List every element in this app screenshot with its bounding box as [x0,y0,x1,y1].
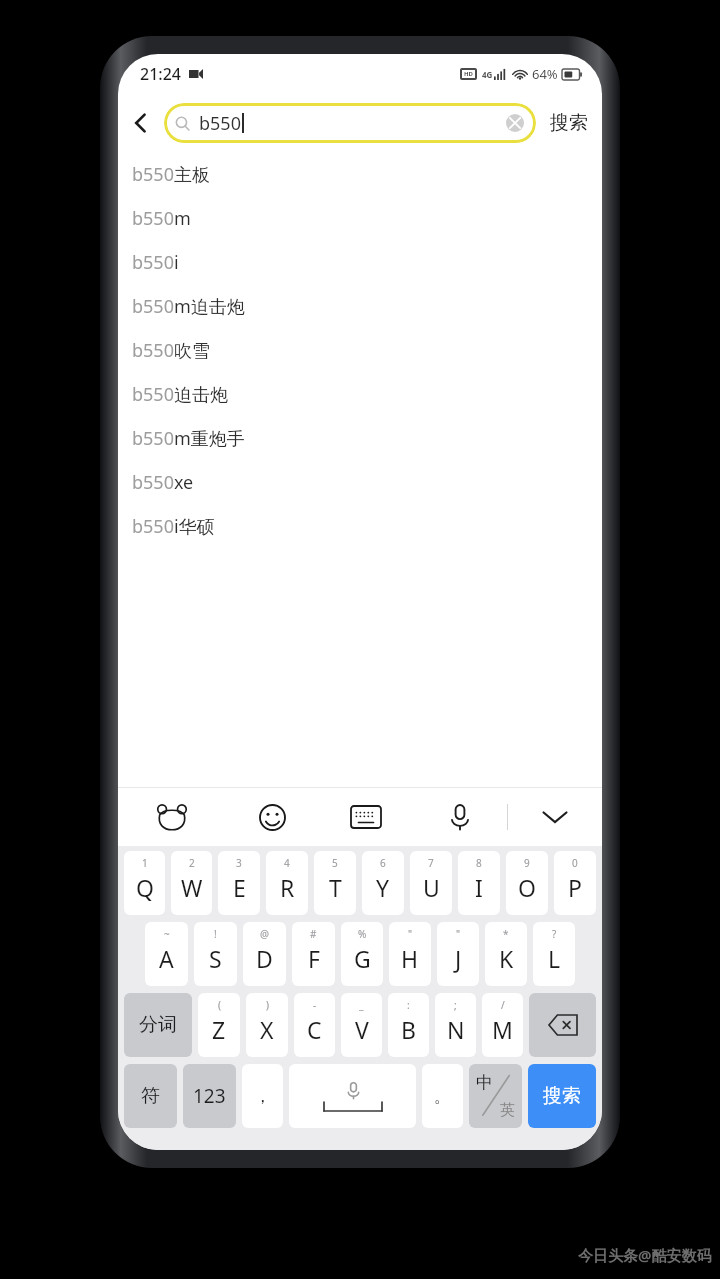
button[interactable]: - [294,993,335,1057]
button[interactable]: Chinese English toggle [469,1064,522,1128]
button[interactable]: ! [194,922,237,986]
button[interactable]: * [485,922,527,986]
staticText: / [501,998,505,1012]
button[interactable]: Backspace [529,993,596,1057]
staticText: 9 [524,856,530,870]
staticText: J [455,943,462,974]
button[interactable]: b550主板 [118,152,602,196]
staticText: 8 [476,856,482,870]
staticText: U [423,872,440,903]
button[interactable]: ， [242,1064,283,1128]
staticText: ( [218,998,221,1012]
button[interactable]: ) [246,993,288,1057]
staticText: @ [260,927,269,941]
staticText: % [358,927,367,941]
button[interactable]: Voice input [413,788,507,846]
staticText: N [447,1014,465,1045]
staticText: ; [454,998,457,1012]
staticText: 21:24 [140,63,181,85]
button[interactable]: 分词 [124,993,192,1057]
button[interactable]: 9 [506,851,548,915]
staticText: : [407,998,410,1012]
button[interactable]: ? [533,922,575,986]
button[interactable]: # [292,922,335,986]
button[interactable]: 5 [314,851,356,915]
staticText: b550i华硕 [132,514,215,539]
button[interactable]: Back [118,94,164,152]
staticText: O [518,872,536,903]
staticText: ) [266,998,269,1012]
staticText: 4 [284,856,290,870]
button[interactable]: b550吹雪 [118,328,602,372]
button[interactable]: Space [289,1064,416,1128]
staticText: b550m迫击炮 [132,294,245,319]
staticText: 7 [428,856,434,870]
button[interactable]: ; [435,993,476,1057]
staticText: b550主板 [132,162,210,187]
staticText: 0 [572,856,578,870]
staticText: 3 [236,856,242,870]
staticText: K [499,943,514,974]
staticText: 2 [189,856,195,870]
button[interactable]: 0 [554,851,596,915]
staticText: R [280,872,295,903]
button[interactable]: _ [341,993,382,1057]
staticText: ~ [164,927,170,941]
button[interactable]: b550迫击炮 [118,372,602,416]
button[interactable]: 6 [362,851,404,915]
staticText: b550xe [132,470,194,495]
staticText: ? [552,927,557,941]
button[interactable]: @ [243,922,286,986]
staticText: 64% [532,65,558,83]
button[interactable]: 符 [124,1064,177,1128]
button[interactable]: b550i [118,240,602,284]
button[interactable]: ~ [145,922,188,986]
button[interactable]: 4 [266,851,308,915]
staticText: W [181,872,203,903]
staticText: B [401,1014,416,1045]
staticText: M [492,1014,513,1045]
staticText: G [354,943,371,974]
staticText: 搜索 [543,1084,581,1108]
staticText: 今日头条@酷安数码 [578,1245,712,1265]
staticText: 英 [500,1101,515,1120]
staticText: 123 [193,1083,226,1109]
staticText: H [401,943,419,974]
button[interactable]: b550m迫击炮 [118,284,602,328]
button[interactable]: % [341,922,383,986]
button[interactable]: 搜索 [536,94,602,152]
button[interactable]: 2 [171,851,212,915]
staticText: b550吹雪 [132,338,210,363]
staticText: X [260,1014,274,1045]
button[interactable]: 7 [410,851,452,915]
staticText: S [209,943,222,974]
button[interactable]: Keyboard layout [319,788,413,846]
button[interactable]: b550xe [118,460,602,504]
button[interactable]: " [389,922,431,986]
button[interactable]: Emoji [225,788,319,846]
staticText: Q [136,872,154,903]
button[interactable]: 。 [422,1064,463,1128]
button[interactable]: b550m [118,196,602,240]
button[interactable]: / [482,993,523,1057]
button[interactable]: Clear [500,108,530,138]
button[interactable]: b550 [164,103,536,143]
button[interactable]: b550m重炮手 [118,416,602,460]
button[interactable]: 搜索 [528,1064,596,1128]
button[interactable]: 1 [124,851,165,915]
button[interactable]: : [388,993,429,1057]
button[interactable]: 123 [183,1064,236,1128]
staticText: - [313,998,317,1012]
staticText: b550m [132,206,191,231]
button[interactable]: ( [198,993,240,1057]
button[interactable]: " [437,922,479,986]
staticText: " [456,927,461,941]
staticText: D [256,943,273,974]
button[interactable]: Hide keyboard [508,788,602,846]
button[interactable]: 8 [458,851,500,915]
staticText: L [548,943,561,974]
button[interactable]: b550i华硕 [118,504,602,548]
button[interactable]: 3 [218,851,260,915]
staticText: 5 [332,856,338,870]
button[interactable]: Baidu input [118,788,225,846]
